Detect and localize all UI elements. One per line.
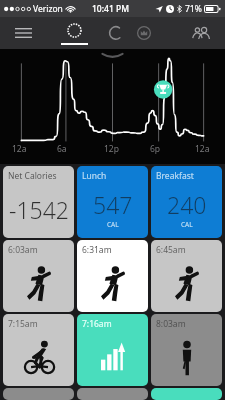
button[interactable]: Activity 7:15am xyxy=(3,314,74,386)
button[interactable]: Activity xyxy=(77,388,148,400)
button[interactable]: Activity xyxy=(52,17,96,49)
staticText: 71% xyxy=(185,3,202,15)
staticText: CAL xyxy=(181,220,193,229)
staticText: 6a xyxy=(57,143,67,155)
button[interactable]: Friends xyxy=(177,17,225,49)
button[interactable]: Activity 7:16am xyxy=(77,314,148,386)
button[interactable]: Net Calories xyxy=(3,166,74,238)
staticText: 12p xyxy=(104,143,119,155)
staticText: 7:15am xyxy=(8,318,38,330)
staticText: 7:16am xyxy=(82,318,112,330)
button[interactable]: Steps xyxy=(126,17,162,49)
button[interactable]: 12a xyxy=(0,49,225,164)
staticText: 240 xyxy=(167,189,207,220)
button[interactable]: Menu xyxy=(0,17,46,49)
staticText: 12a xyxy=(12,143,27,155)
button[interactable]: Activity 6:03am xyxy=(3,240,74,312)
staticText: Net Calories xyxy=(8,170,57,182)
staticText: Lunch xyxy=(82,170,107,182)
button[interactable]: Activity xyxy=(151,388,222,400)
button[interactable]: Activity 6:31am xyxy=(77,240,148,312)
staticText: Breakfast xyxy=(156,170,194,182)
button[interactable]: Breakfast xyxy=(151,166,222,238)
staticText: Verizon xyxy=(33,3,63,15)
button[interactable]: Activity xyxy=(3,388,74,400)
staticText: 6:03am xyxy=(8,244,38,256)
staticText: 12a xyxy=(195,143,210,155)
staticText: -1542 xyxy=(9,194,69,225)
staticText: CAL xyxy=(107,220,119,229)
button[interactable]: Activity 6:45am xyxy=(151,240,222,312)
button[interactable]: Activity 8:03am xyxy=(151,314,222,386)
button[interactable]: Sleep xyxy=(96,17,134,49)
staticText: 8:03am xyxy=(156,318,186,330)
button[interactable]: Lunch xyxy=(77,166,148,238)
staticText: 547 xyxy=(93,189,133,220)
staticText: 6:45am xyxy=(156,244,186,256)
staticText: 6:31am xyxy=(82,244,112,256)
staticText: 10:41 PM xyxy=(92,3,129,15)
staticText: 6p xyxy=(150,143,161,155)
